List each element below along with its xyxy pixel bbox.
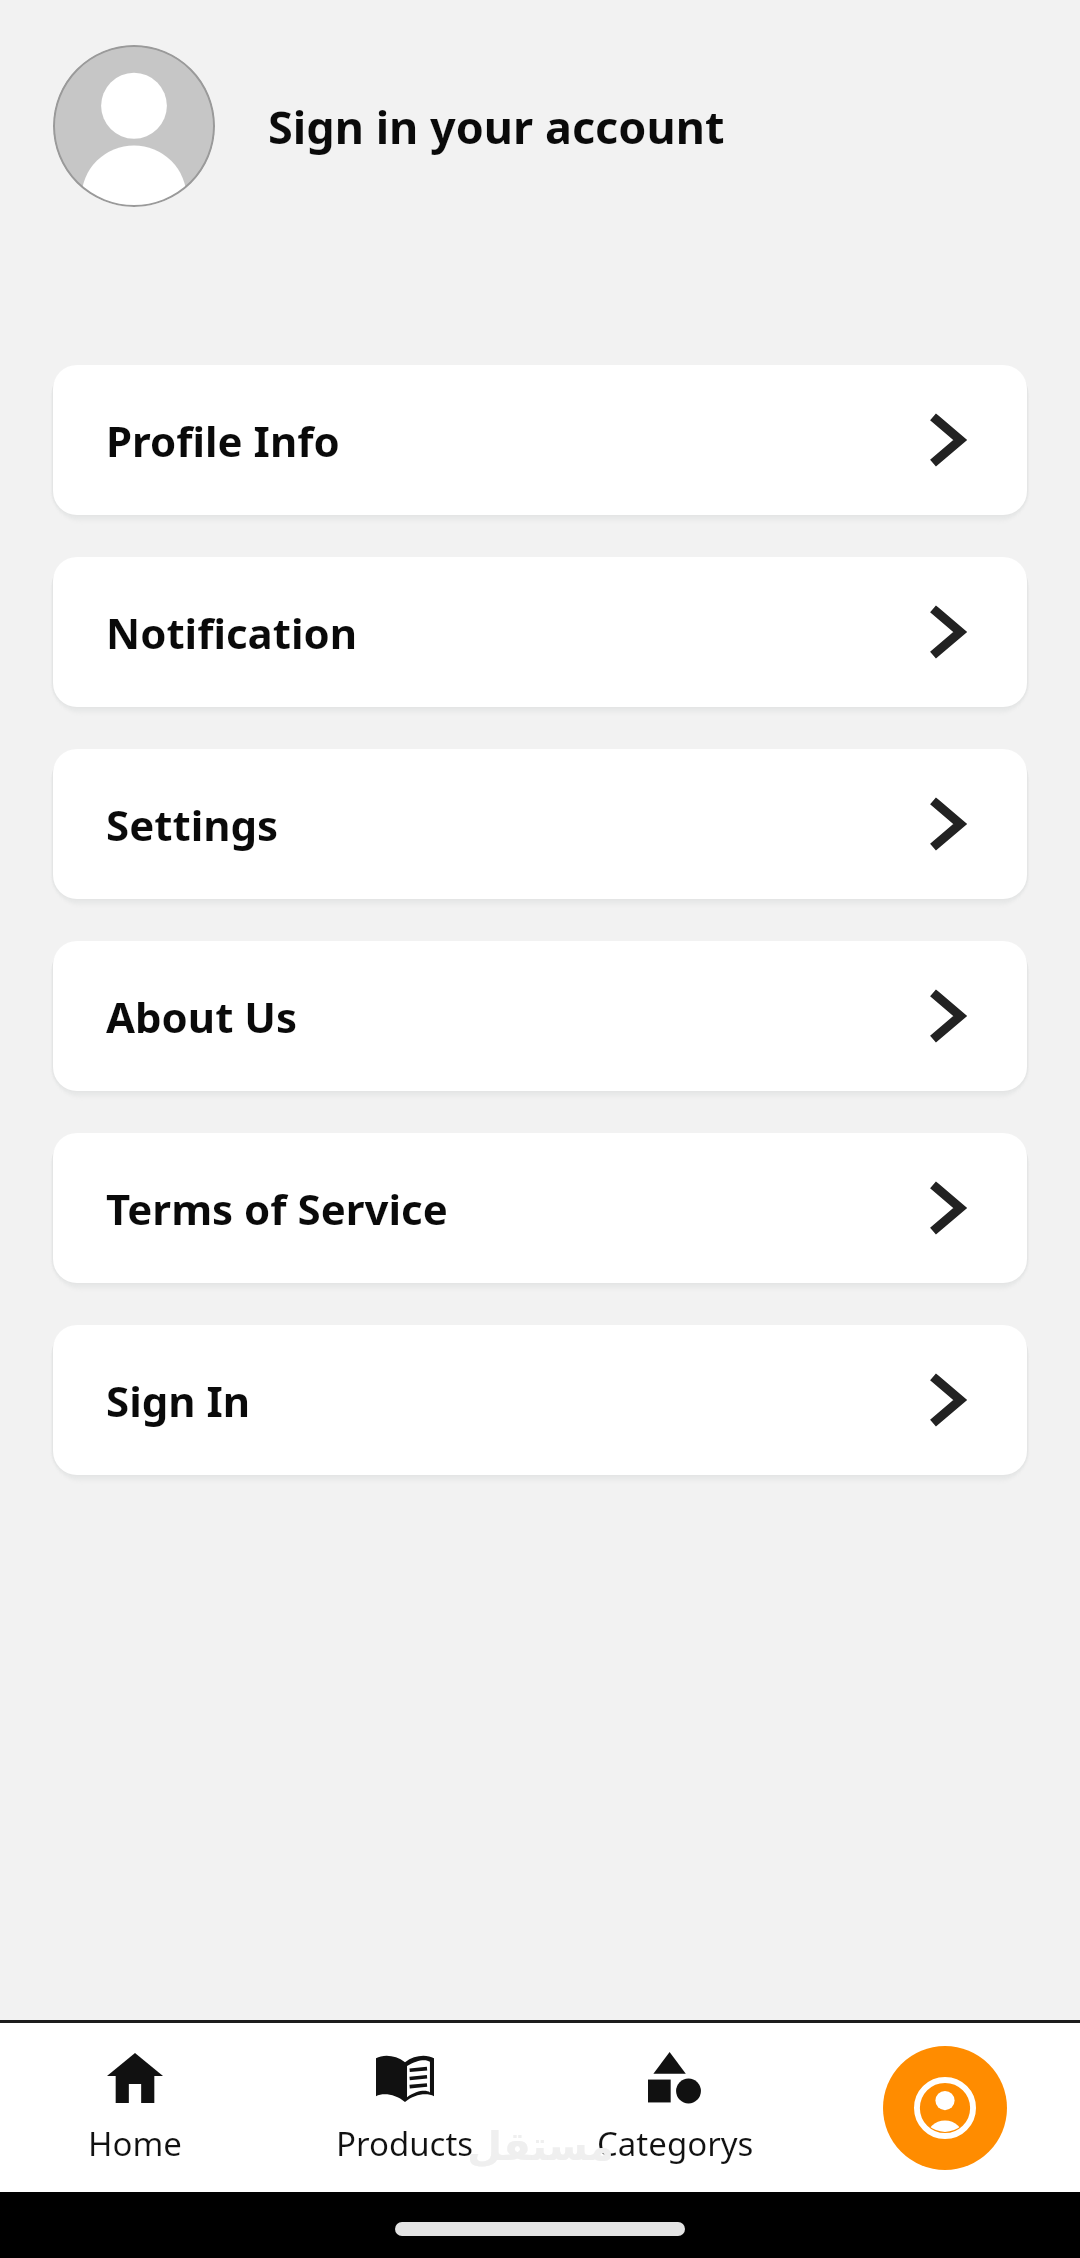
button[interactable]: Notification	[53, 557, 1027, 707]
button[interactable]: Products	[270, 2023, 540, 2192]
staticText: Settings	[106, 796, 279, 853]
button[interactable]: Home	[0, 2023, 270, 2192]
staticText: Sign in your account	[268, 96, 725, 157]
staticText: مستقل	[467, 2123, 614, 2170]
staticText: Categorys	[597, 2121, 754, 2166]
staticText: Home	[88, 2121, 182, 2166]
button[interactable]: Terms of Service	[53, 1133, 1027, 1283]
button[interactable]: About Us	[53, 941, 1027, 1091]
button[interactable]: Settings	[53, 749, 1027, 899]
other: Categorys	[648, 2052, 702, 2104]
staticText: Notification	[106, 604, 358, 661]
staticText: Products	[336, 2121, 474, 2166]
other: Products	[376, 2054, 434, 2102]
button[interactable]: Account	[883, 2046, 1007, 2170]
staticText: Profile Info	[106, 412, 340, 469]
other: Home	[107, 2053, 163, 2103]
button[interactable]: Profile Info	[53, 365, 1027, 515]
staticText: About Us	[106, 988, 298, 1045]
button[interactable]: Categorys	[540, 2023, 810, 2192]
staticText: Sign In	[106, 1372, 251, 1429]
staticText: Terms of Service	[106, 1180, 448, 1237]
button[interactable]: Sign In	[53, 1325, 1027, 1475]
